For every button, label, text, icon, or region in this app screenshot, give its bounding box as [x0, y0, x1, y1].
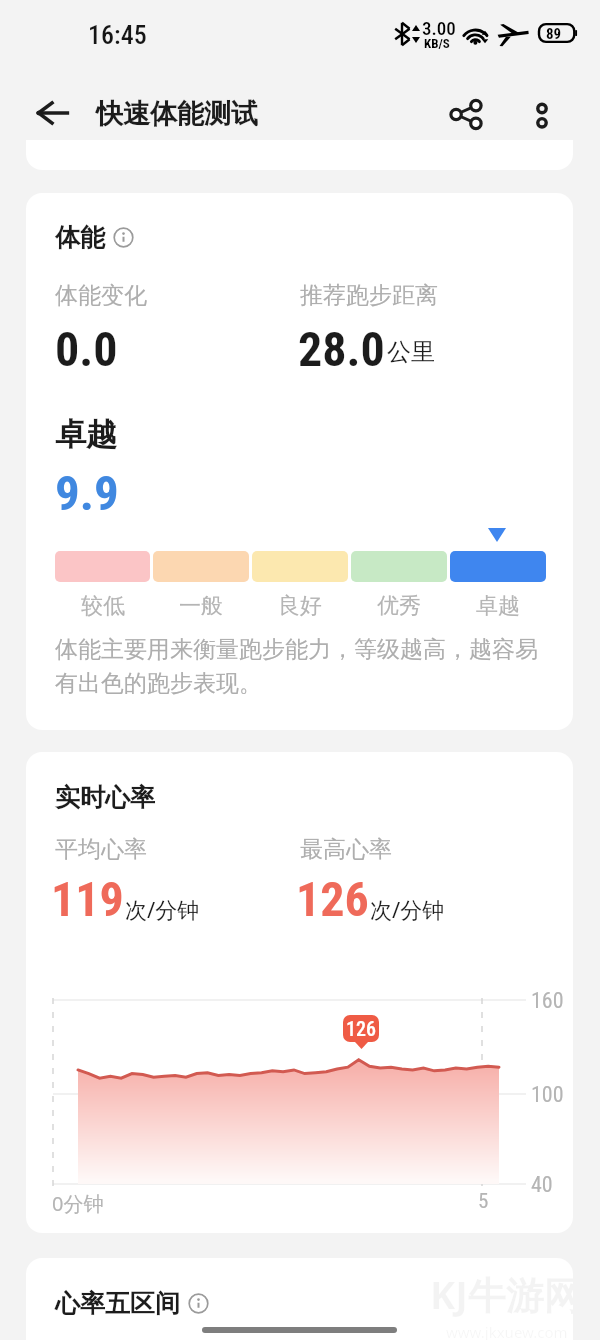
- staticText: KJ牛游网: [430, 1268, 573, 1320]
- staticText: 体能变化: [55, 281, 147, 310]
- staticText: 5: [478, 1189, 489, 1214]
- staticText: 0分钟: [52, 1190, 104, 1217]
- staticText: 次/分钟: [125, 894, 200, 924]
- staticText: KB/S: [424, 36, 450, 51]
- staticText: 实时心率: [55, 782, 155, 813]
- button[interactable]: About 心率五区间: [188, 1293, 209, 1314]
- staticText: 3.00: [422, 17, 456, 39]
- staticText: 卓越: [55, 415, 117, 454]
- button[interactable]: 心率五区间: [26, 1258, 573, 1340]
- staticText: 126: [296, 871, 369, 927]
- staticText: 平均心率: [55, 835, 147, 864]
- button[interactable]: Share: [438, 86, 494, 142]
- staticText: 89: [546, 25, 562, 43]
- staticText: 公里: [387, 337, 435, 367]
- staticText: 126: [346, 1017, 376, 1040]
- staticText: 40: [531, 1172, 553, 1198]
- staticText: 推荐跑步距离: [300, 281, 438, 310]
- staticText: 体能: [55, 222, 105, 253]
- staticText: 较低: [81, 592, 125, 620]
- staticText: 16:45: [88, 20, 147, 50]
- button[interactable]: About 体能: [113, 227, 134, 248]
- staticText: 优秀: [377, 592, 421, 620]
- button[interactable]: Back: [24, 85, 80, 141]
- staticText: 次/分钟: [370, 894, 445, 924]
- staticText: 体能主要用来衡量跑步能力，等级越高，越容易有出色的跑步表现。: [55, 635, 548, 698]
- staticText: 一般: [179, 592, 223, 620]
- staticText: 最高心率: [300, 835, 392, 864]
- staticText: 9.9: [55, 465, 119, 522]
- staticText: 119: [51, 871, 124, 927]
- staticText: 0.0: [55, 321, 118, 377]
- button[interactable]: 体能: [26, 193, 573, 730]
- staticText: 快速体能测试: [96, 97, 258, 131]
- staticText: 160: [531, 988, 564, 1014]
- staticText: 心率五区间: [55, 1288, 180, 1319]
- staticText: 100: [531, 1082, 564, 1108]
- staticText: 良好: [278, 592, 322, 620]
- button[interactable]: 实时心率: [26, 752, 573, 1233]
- button[interactable]: More options: [514, 88, 570, 144]
- staticText: 28.0: [298, 321, 385, 377]
- staticText: 卓越: [476, 592, 520, 620]
